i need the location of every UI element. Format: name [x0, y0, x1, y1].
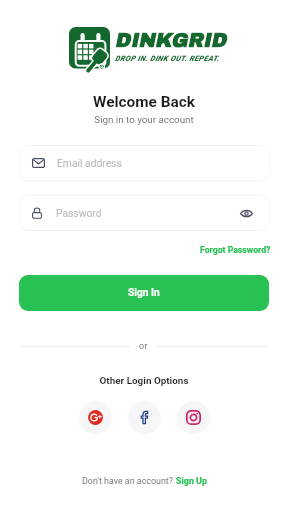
staticText: Other Login Options: [0, 375, 288, 387]
staticText: Don't have an account?: [82, 476, 176, 486]
staticText: DROP IN. DINK OUT. REPEAT.: [115, 54, 220, 63]
button[interactable]: Password: [19, 195, 270, 231]
staticText: Sign In: [128, 287, 160, 299]
button[interactable]: Sign in with Facebook: [128, 401, 161, 434]
staticText: Sign in to your account: [0, 114, 288, 125]
staticText: Password: [56, 207, 102, 219]
staticText: Forgot Password?: [200, 245, 271, 255]
staticText: Welcome Back: [0, 93, 288, 111]
button[interactable]: Sign in with Instagram: [177, 401, 210, 434]
button[interactable]: Sign In: [19, 275, 269, 311]
staticText: or: [139, 341, 148, 352]
button[interactable]: Sign Up: [176, 476, 207, 486]
staticText: Sign Up: [176, 476, 207, 486]
button[interactable]: Forgot Password?: [200, 245, 271, 255]
button[interactable]: Sign in with Google: [79, 401, 112, 434]
staticText: Email address: [57, 157, 122, 169]
button[interactable]: Email address: [19, 145, 270, 181]
staticText: DINKGRID: [115, 29, 227, 51]
